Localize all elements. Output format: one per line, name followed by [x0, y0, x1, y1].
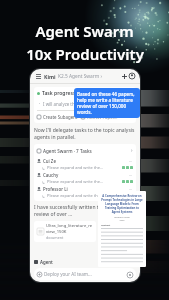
staticText: K2.5 Agent Swarm › [58, 73, 102, 80]
button[interactable]: Task progress [34, 87, 136, 123]
staticText: ··· [129, 187, 133, 192]
button[interactable]: Voice [126, 271, 133, 278]
button[interactable]: Profile [128, 72, 136, 80]
staticText: view_150K [46, 229, 67, 235]
button[interactable]: A Comprehensive Review on Prompt Technol… [98, 191, 146, 267]
button[interactable]: Agent Swarm · 7 Tasks [34, 144, 136, 201]
staticText: Cui Ze [43, 158, 56, 164]
staticText: Professor Li [43, 186, 68, 192]
staticText: document [46, 235, 64, 240]
button[interactable]: Deploy your AI team... [34, 268, 136, 280]
staticText: Agent Swarm [35, 21, 134, 41]
staticText: I will analyze the research topic... [43, 101, 111, 107]
staticText: Now I'll delegate tasks to the topic ana… [34, 127, 136, 141]
staticText: ··· [129, 173, 133, 178]
staticText: Based on these 46 papers, help me write … [77, 91, 137, 115]
staticText: ↳ [42, 180, 46, 184]
staticText: ↳ [42, 194, 46, 198]
staticText: Please expand and write the... [47, 193, 104, 198]
staticText: Ultra_long_literature_re [46, 223, 93, 229]
staticText: I have successfully written the literatu… [34, 204, 136, 218]
button[interactable]: New [120, 72, 128, 80]
staticText: › [131, 147, 133, 154]
staticText: ··· [129, 159, 133, 164]
staticText: Research Team [101, 216, 143, 219]
staticText: Kimi [44, 73, 56, 80]
staticText: Cauchy [43, 172, 59, 178]
staticText: Create Subagent [43, 114, 78, 120]
staticText: Task progress [42, 90, 76, 97]
staticText: Deploy your AI team... [44, 271, 92, 277]
staticText: Please expand and write the... [47, 179, 104, 184]
staticText: · [39, 100, 41, 107]
staticText: ↳ [42, 166, 46, 170]
staticText: A Comprehensive Review on Prompt Technol… [101, 194, 143, 214]
button[interactable]: Ultra_long_literature_re [34, 221, 96, 242]
staticText: Abstract [101, 224, 111, 227]
staticText: Agent [40, 259, 53, 265]
staticText: 2025 [101, 219, 143, 222]
staticText: Agent Swarm · 7 Tasks [43, 148, 92, 154]
staticText: Review Paper... [87, 114, 118, 120]
staticText: › [131, 113, 133, 120]
staticText: Please expand and write the... [47, 165, 104, 170]
staticText: 10x Productivity [26, 44, 144, 64]
button[interactable]: Menu [34, 72, 42, 80]
